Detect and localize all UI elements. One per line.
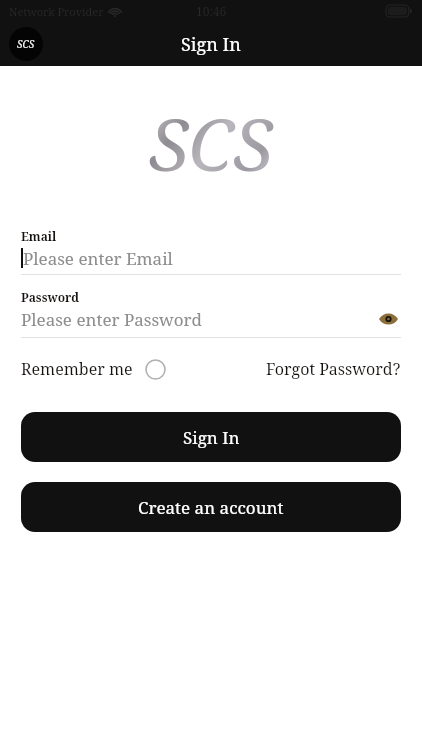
button[interactable]: Account [9, 27, 43, 61]
button[interactable]: Show password [375, 307, 401, 331]
staticText: 10:46 [196, 3, 227, 19]
button[interactable]: Sign In [21, 412, 401, 462]
button[interactable]: Create an account [21, 482, 401, 532]
button[interactable]: Please enter Password [21, 307, 401, 331]
staticText: Sign In [183, 426, 240, 449]
staticText: Create an account [138, 496, 284, 519]
staticText: SCS [17, 37, 35, 51]
staticText: Remember me [21, 358, 133, 380]
button[interactable]: Remember me [21, 358, 170, 380]
staticText: Please enter Email [23, 247, 173, 270]
staticText: Email [21, 228, 57, 244]
button[interactable]: Please enter Email [21, 246, 401, 270]
staticText: Password [21, 289, 80, 305]
staticText: Sign In [181, 32, 241, 57]
staticText: Network Provider [9, 4, 104, 19]
button[interactable]: Forgot Password? [266, 358, 401, 380]
staticText: Forgot Password? [266, 358, 401, 380]
staticText: SCS [149, 94, 273, 192]
staticText: Please enter Password [21, 308, 375, 331]
